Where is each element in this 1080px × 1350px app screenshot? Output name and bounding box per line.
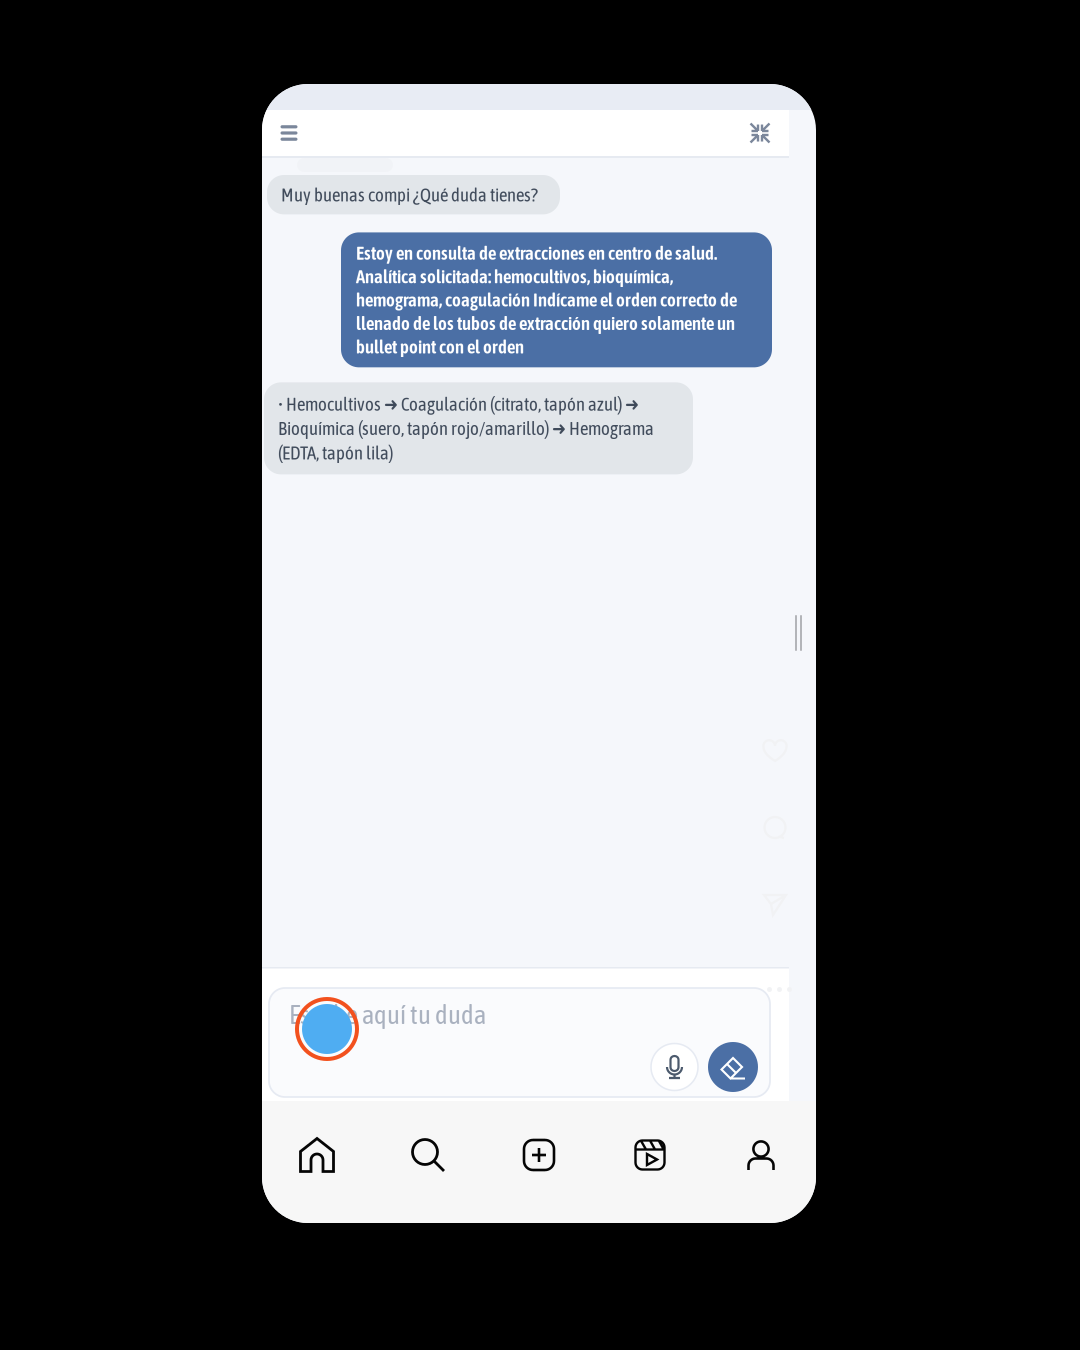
button[interactable]: Profile (705, 1101, 816, 1209)
button[interactable]: Search (372, 1101, 483, 1209)
staticText: Muy buenas compi ¿Qué duda tienes? (281, 184, 538, 205)
button[interactable]: Reels (594, 1101, 705, 1209)
button[interactable]: Exit full screen (743, 111, 777, 155)
button[interactable]: Create (483, 1101, 594, 1209)
staticText: • Hemocultivos ➜ Coagulación (citrato, t… (278, 393, 654, 463)
staticText: Estoy en consulta de extracciones en cen… (356, 242, 737, 357)
button[interactable]: Home (261, 1101, 372, 1209)
button[interactable]: Clear text (708, 1042, 758, 1092)
button[interactable]: Dictate (651, 1043, 698, 1090)
staticText: Escribe aquí tu duda (289, 999, 486, 1030)
button[interactable]: Menu (270, 111, 308, 155)
